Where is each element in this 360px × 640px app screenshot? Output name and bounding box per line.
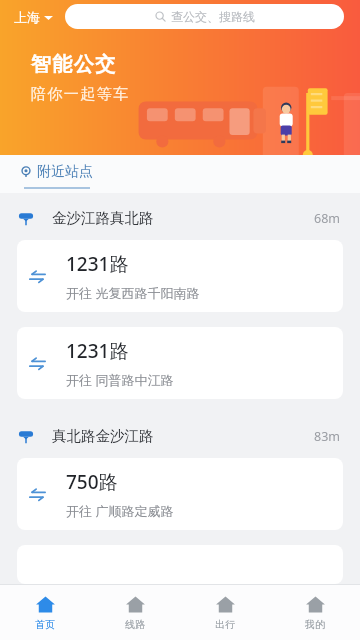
staticText: 线路 bbox=[125, 618, 145, 631]
staticText: 83m bbox=[314, 428, 340, 445]
button[interactable]: 750路 bbox=[17, 458, 343, 530]
staticText: 开往 光复西路千阳南路 bbox=[66, 284, 200, 302]
staticText: 真北路金沙江路 bbox=[52, 427, 154, 445]
button[interactable]: 附近站点 bbox=[18, 160, 95, 184]
staticText: 智能公交 bbox=[30, 52, 116, 77]
staticText: 开往 广顺路定威路 bbox=[66, 502, 174, 520]
staticText: 查公交、搜路线 bbox=[171, 9, 255, 24]
button[interactable]: 1231路 bbox=[17, 240, 343, 312]
button[interactable]: 真北路金沙江路 bbox=[0, 423, 360, 449]
staticText: 上海 bbox=[14, 9, 40, 25]
button[interactable]: 线路 bbox=[90, 585, 180, 640]
staticText: 附近站点 bbox=[37, 163, 93, 181]
staticText: 1231路 bbox=[66, 338, 129, 364]
staticText: 金沙江路真北路 bbox=[52, 209, 154, 227]
button[interactable]: 上海 bbox=[10, 5, 57, 29]
button[interactable]: 我的 bbox=[270, 585, 360, 640]
staticText: 开往 同普路中江路 bbox=[66, 371, 174, 389]
button[interactable]: 首页 bbox=[0, 585, 90, 640]
staticText: 68m bbox=[314, 210, 340, 227]
button[interactable]: 出行 bbox=[180, 585, 270, 640]
staticText: 750路 bbox=[66, 469, 118, 495]
staticText: 陪你一起等车 bbox=[30, 85, 129, 104]
button[interactable]: 查公交、搜路线 bbox=[65, 4, 344, 29]
staticText: 1231路 bbox=[66, 251, 129, 277]
button[interactable]: 1231路 bbox=[17, 327, 343, 399]
staticText: 首页 bbox=[35, 618, 55, 631]
button[interactable]: 金沙江路真北路 bbox=[0, 205, 360, 231]
staticText: 出行 bbox=[215, 618, 235, 631]
staticText: 我的 bbox=[305, 618, 325, 631]
